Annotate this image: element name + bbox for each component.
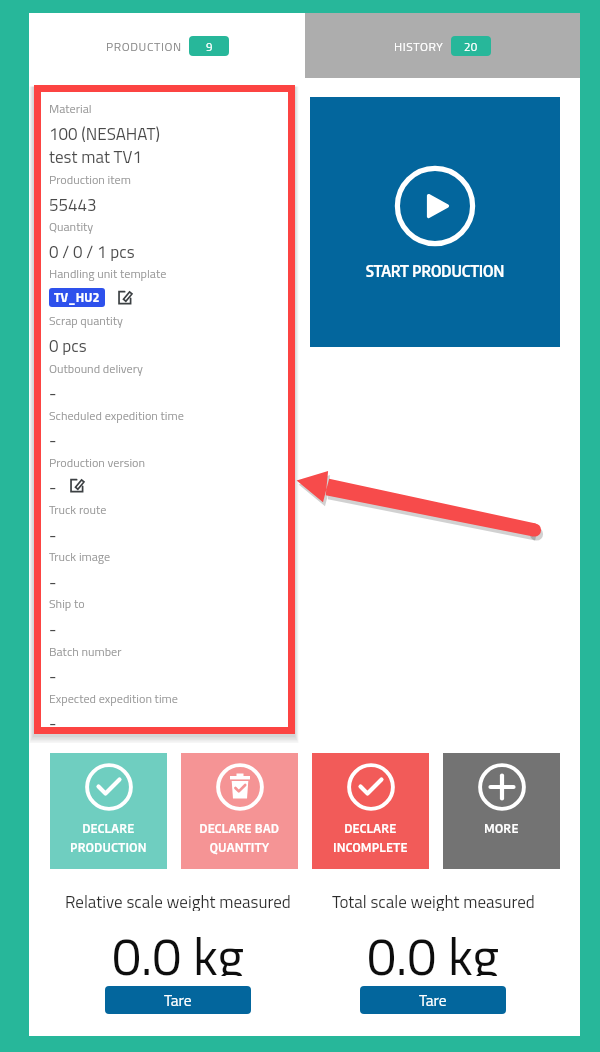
staticText: Tare — [419, 988, 447, 1012]
staticText: - — [49, 427, 57, 449]
button[interactable]: MORE — [443, 753, 560, 869]
staticText: Material — [49, 99, 92, 118]
staticText: - — [49, 380, 57, 402]
staticText: Total scale weight measured — [332, 889, 535, 911]
staticText: - — [49, 663, 57, 685]
staticText: DECLARE PRODUCTION — [50, 820, 167, 855]
staticText: Scheduled expedition time — [49, 406, 184, 425]
button[interactable]: Material — [41, 92, 288, 727]
staticText: Production version — [49, 453, 146, 472]
button[interactable]: Tare — [360, 986, 506, 1014]
staticText: Handling unit template — [49, 264, 167, 283]
staticText: - — [49, 616, 57, 638]
staticText: test mat TV1 — [49, 144, 142, 166]
staticText: Batch number — [49, 642, 122, 661]
button[interactable]: START PRODUCTION — [310, 97, 560, 347]
button[interactable]: DECLARE BAD QUANTITY — [181, 753, 298, 869]
button[interactable]: HISTORY — [305, 13, 580, 78]
staticText: Scrap quantity — [49, 311, 123, 330]
staticText: MORE — [443, 820, 560, 836]
staticText: Truck image — [49, 547, 111, 566]
staticText: Production item — [49, 170, 131, 189]
staticText: Quantity — [49, 217, 94, 236]
button[interactable]: DECLARE PRODUCTION — [50, 753, 167, 869]
staticText: Expected expedition time — [49, 689, 178, 708]
staticText: Relative scale weight measured — [65, 889, 291, 911]
staticText: DECLARE BAD QUANTITY — [181, 820, 298, 855]
staticText: TV_HU2 — [54, 288, 100, 307]
button[interactable]: PRODUCTION — [29, 13, 305, 78]
staticText: DECLARE INCOMPLETE — [312, 820, 429, 855]
staticText: 100 (NESAHAT) — [49, 121, 161, 143]
staticText: 0.0 kg — [112, 916, 245, 976]
staticText: 20 — [464, 38, 478, 55]
staticText: 0 / 0 / 1 pcs — [49, 239, 135, 261]
staticText: 55443 — [49, 192, 97, 214]
staticText: 0.0 kg — [367, 916, 500, 976]
button[interactable]: Tare — [105, 986, 251, 1014]
staticText: START PRODUCTION — [366, 260, 505, 280]
staticText: - — [49, 522, 57, 544]
staticText: PRODUCTION — [106, 37, 182, 55]
button[interactable]: DECLARE INCOMPLETE — [312, 753, 429, 869]
staticText: Tare — [164, 988, 192, 1012]
staticText: Outbound delivery — [49, 359, 143, 378]
staticText: - — [49, 710, 57, 732]
staticText: Ship to — [49, 594, 85, 613]
staticText: - — [49, 569, 57, 591]
staticText: 9 — [206, 38, 213, 55]
staticText: Truck route — [49, 500, 107, 519]
staticText: - — [49, 474, 57, 496]
staticText: HISTORY — [394, 37, 444, 55]
staticText: 0 pcs — [49, 333, 87, 355]
